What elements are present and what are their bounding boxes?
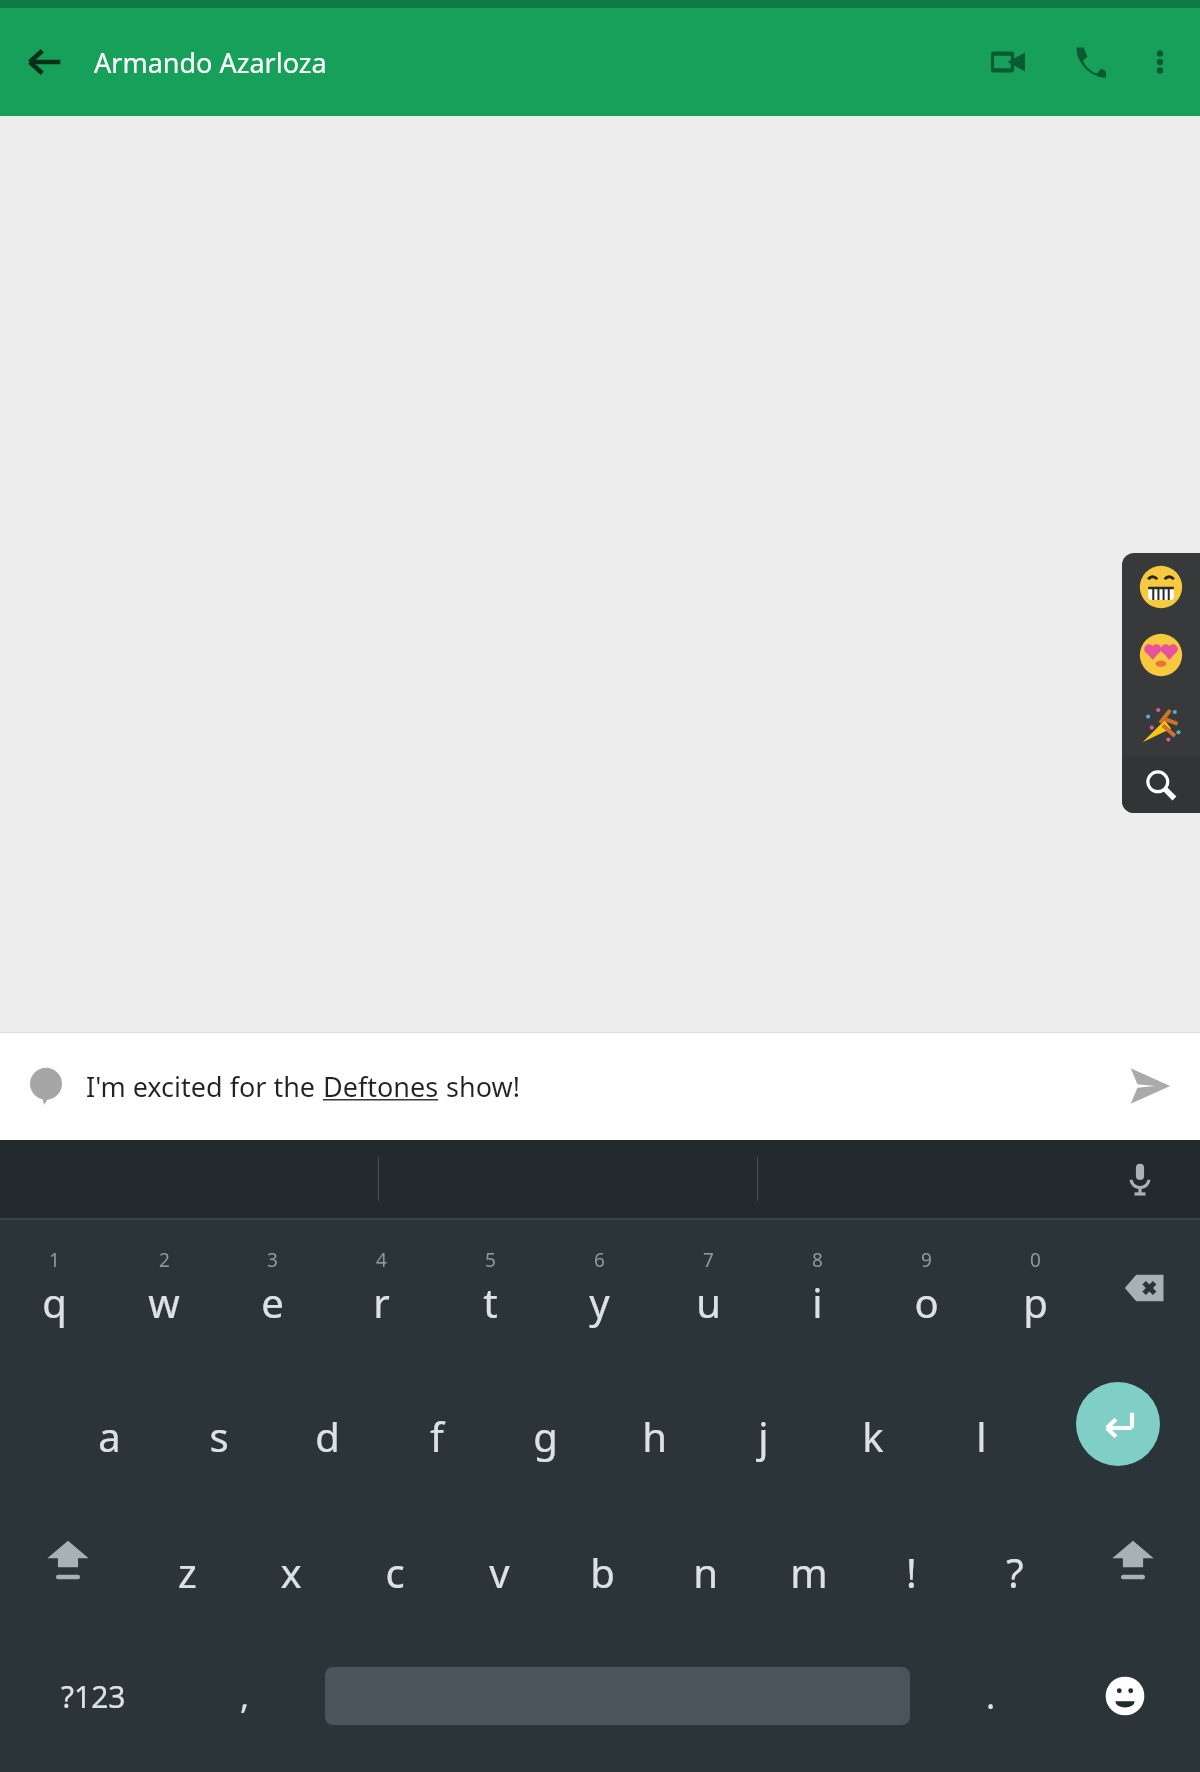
button[interactable]: Back: [10, 27, 80, 97]
button[interactable]: n: [654, 1492, 757, 1628]
staticText: .: [986, 1673, 996, 1719]
staticText: u: [696, 1275, 721, 1329]
button[interactable]: I'm excited for the: [86, 1068, 1118, 1105]
button[interactable]: 2: [109, 1220, 218, 1356]
button[interactable]: Shift: [1066, 1492, 1200, 1628]
staticText: y: [589, 1275, 610, 1329]
button[interactable]: Backspace: [1090, 1220, 1200, 1356]
button[interactable]: 9: [872, 1220, 981, 1356]
staticText: m: [790, 1545, 828, 1599]
staticText: ?: [1006, 1545, 1024, 1599]
staticText: ,: [240, 1673, 250, 1719]
staticText: 3: [267, 1247, 278, 1273]
staticText: 4: [376, 1247, 387, 1273]
staticText: 5: [485, 1247, 496, 1273]
button[interactable]: Enter: [1036, 1356, 1200, 1492]
staticText: p: [1023, 1275, 1048, 1329]
button[interactable]: Space: [303, 1628, 932, 1764]
button[interactable]: m: [757, 1492, 860, 1628]
staticText: z: [178, 1545, 197, 1599]
staticText: 0: [1030, 1247, 1041, 1273]
staticText: 7: [703, 1247, 714, 1273]
staticText: s: [209, 1409, 229, 1463]
button[interactable]: More options: [1130, 32, 1190, 92]
staticText: h: [642, 1409, 667, 1463]
staticText: b: [590, 1545, 615, 1599]
staticText: Armando Azarloza: [94, 44, 327, 81]
staticText: c: [385, 1545, 405, 1599]
button[interactable]: s: [164, 1356, 273, 1492]
button[interactable]: Voice input: [1080, 1140, 1200, 1218]
staticText: !: [906, 1545, 917, 1599]
staticText: a: [98, 1409, 121, 1463]
button[interactable]: c: [343, 1492, 447, 1628]
button[interactable]: 7: [654, 1220, 763, 1356]
staticText: t: [483, 1275, 498, 1329]
button[interactable]: Choose SIM: [18, 1058, 74, 1114]
button[interactable]: 6: [545, 1220, 654, 1356]
staticText: x: [280, 1545, 302, 1599]
button[interactable]: x: [239, 1492, 343, 1628]
staticText: 9: [921, 1247, 932, 1273]
staticText: 1: [49, 1247, 60, 1273]
staticText: l: [976, 1409, 987, 1463]
button[interactable]: l: [927, 1356, 1036, 1492]
button[interactable]: f: [382, 1356, 491, 1492]
staticText: v: [489, 1545, 510, 1599]
button[interactable]: Emoji: [1049, 1628, 1200, 1764]
staticText: I'm excited for the: [86, 1068, 323, 1105]
button[interactable]: !: [860, 1492, 963, 1628]
staticText: k: [862, 1409, 884, 1463]
button[interactable]: Send: [1118, 1054, 1182, 1118]
button[interactable]: 0: [981, 1220, 1090, 1356]
staticText: j: [758, 1409, 769, 1463]
staticText: ?123: [61, 1676, 126, 1717]
button[interactable]: ,: [186, 1628, 303, 1764]
button[interactable]: 1: [0, 1220, 109, 1356]
staticText: o: [914, 1275, 939, 1329]
button[interactable]: Shift: [0, 1492, 135, 1628]
button[interactable]: Video call: [972, 26, 1044, 98]
staticText: w: [148, 1275, 180, 1329]
button[interactable]: g: [491, 1356, 600, 1492]
button[interactable]: 4: [327, 1220, 436, 1356]
staticText: q: [42, 1275, 67, 1329]
button[interactable]: 5: [436, 1220, 545, 1356]
staticText: n: [693, 1545, 718, 1599]
button[interactable]: k: [818, 1356, 927, 1492]
staticText: 6: [594, 1247, 605, 1273]
button[interactable]: a: [55, 1356, 164, 1492]
button[interactable]: Call: [1054, 26, 1126, 98]
staticText: i: [812, 1275, 823, 1329]
button[interactable]: j: [709, 1356, 818, 1492]
staticText: Deftones: [323, 1068, 439, 1105]
staticText: 8: [812, 1247, 823, 1273]
button[interactable]: Emoji suggestions: [1122, 553, 1200, 813]
button[interactable]: 3: [218, 1220, 327, 1356]
button[interactable]: ?: [963, 1492, 1066, 1628]
button[interactable]: ?123: [0, 1628, 186, 1764]
button[interactable]: b: [551, 1492, 654, 1628]
button[interactable]: h: [600, 1356, 709, 1492]
button[interactable]: v: [447, 1492, 551, 1628]
button[interactable]: z: [135, 1492, 239, 1628]
staticText: g: [533, 1409, 558, 1463]
button[interactable]: 8: [763, 1220, 872, 1356]
button[interactable]: d: [273, 1356, 382, 1492]
staticText: 2: [159, 1247, 170, 1273]
button[interactable]: .: [932, 1628, 1049, 1764]
staticText: d: [315, 1409, 340, 1463]
staticText: e: [261, 1275, 284, 1329]
staticText: r: [373, 1275, 390, 1329]
staticText: f: [430, 1409, 444, 1463]
staticText: show!: [439, 1068, 520, 1105]
